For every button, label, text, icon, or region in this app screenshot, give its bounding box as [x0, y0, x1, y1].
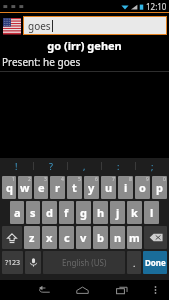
staticText: 5 — [78, 176, 81, 183]
button[interactable]: ? — [34, 158, 67, 174]
button[interactable]: o — [135, 176, 150, 199]
staticText: 12:10 — [146, 1, 167, 12]
button[interactable]: y — [84, 176, 99, 199]
button[interactable]: Back — [24, 280, 63, 300]
staticText: q — [6, 180, 13, 195]
staticText: n — [114, 230, 122, 245]
staticText: 3 — [44, 176, 47, 183]
staticText: t — [72, 180, 77, 195]
staticText: l — [150, 205, 154, 220]
staticText: p — [156, 180, 163, 195]
staticText: . — [133, 257, 136, 269]
button[interactable]: : — [102, 158, 135, 174]
staticText: o — [139, 180, 146, 195]
staticText: : — [117, 160, 120, 172]
staticText: y — [88, 180, 95, 195]
button[interactable]: t — [67, 176, 82, 199]
staticText: , — [83, 160, 86, 172]
button[interactable]: Shift — [2, 226, 22, 249]
staticText: ? — [49, 160, 53, 172]
staticText: v — [80, 230, 87, 245]
staticText: e — [38, 180, 45, 195]
button[interactable]: w — [18, 176, 32, 199]
button[interactable]: m — [127, 226, 142, 249]
button[interactable]: r — [50, 176, 65, 199]
button[interactable]: ; — [136, 158, 169, 174]
button[interactable]: k — [127, 201, 142, 224]
staticText: x — [46, 230, 53, 245]
button[interactable]: a — [10, 201, 24, 224]
button[interactable]: q — [2, 176, 16, 199]
button[interactable]: s — [26, 201, 40, 224]
staticText: a — [14, 205, 21, 220]
staticText: go (irr) gehen — [0, 38, 169, 53]
button[interactable]: v — [76, 226, 91, 249]
staticText: 1 — [12, 176, 15, 183]
button[interactable]: z — [24, 226, 40, 249]
staticText: g — [80, 205, 87, 220]
button[interactable]: ?123 — [2, 251, 23, 274]
staticText: f — [64, 205, 69, 220]
button[interactable]: e — [34, 176, 48, 199]
staticText: Done — [145, 257, 166, 268]
button[interactable]: j — [110, 201, 125, 224]
button[interactable]: i — [118, 176, 133, 199]
staticText: j — [116, 205, 120, 220]
button[interactable]: p — [152, 176, 167, 199]
button[interactable]: Recent apps — [102, 280, 141, 300]
staticText: English (US) — [62, 257, 107, 268]
button[interactable]: g — [76, 201, 91, 224]
staticText: ?123 — [5, 258, 21, 268]
button[interactable]: Delete — [144, 226, 167, 249]
button[interactable]: c — [59, 226, 74, 249]
staticText: d — [46, 205, 53, 220]
staticText: m — [129, 230, 140, 245]
staticText: s — [30, 205, 36, 220]
staticText: ! — [15, 160, 18, 172]
button[interactable]: English (US) — [43, 251, 125, 274]
button[interactable]: b — [93, 226, 108, 249]
button[interactable]: More options — [141, 280, 169, 300]
button[interactable]: ! — [0, 158, 33, 174]
staticText: Present: he goes — [2, 55, 169, 69]
staticText: 7 — [112, 176, 115, 183]
staticText: i — [124, 180, 128, 195]
button[interactable]: u — [101, 176, 116, 199]
button[interactable]: d — [42, 201, 57, 224]
staticText: ; — [151, 160, 154, 172]
staticText: 9 — [146, 176, 149, 183]
button[interactable]: Select source language — [2, 16, 21, 35]
staticText: u — [105, 180, 113, 195]
button[interactable]: n — [110, 226, 125, 249]
staticText: b — [97, 230, 104, 245]
staticText: k — [131, 205, 138, 220]
button[interactable]: goes — [24, 17, 166, 34]
staticText: w — [20, 180, 30, 195]
button[interactable]: , — [68, 158, 101, 174]
button[interactable]: f — [59, 201, 74, 224]
staticText: r — [55, 180, 60, 195]
button[interactable]: h — [93, 201, 108, 224]
button[interactable]: x — [42, 226, 57, 249]
button[interactable]: . — [127, 251, 141, 274]
button[interactable]: l — [144, 201, 159, 224]
staticText: 0 — [163, 176, 166, 183]
button[interactable]: Done — [143, 251, 167, 274]
staticText: c — [64, 230, 70, 245]
staticText: 8 — [129, 176, 132, 183]
staticText: 4 — [61, 176, 64, 183]
staticText: goes — [28, 19, 51, 33]
staticText: 6 — [95, 176, 98, 183]
staticText: 2 — [28, 176, 31, 183]
button[interactable]: Home — [63, 280, 102, 300]
staticText: z — [29, 230, 35, 245]
button[interactable]: Voice input — [25, 251, 41, 274]
staticText: h — [97, 205, 105, 220]
